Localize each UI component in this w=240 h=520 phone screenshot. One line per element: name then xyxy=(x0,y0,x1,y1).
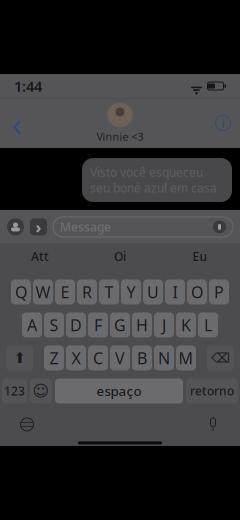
button[interactable]: J xyxy=(154,312,174,337)
button[interactable]: retorno xyxy=(186,378,238,403)
staticText: Z xyxy=(49,347,58,368)
staticText: I xyxy=(172,281,177,302)
staticText: G xyxy=(114,314,126,335)
staticText: Message xyxy=(60,219,111,235)
staticText: 123 xyxy=(4,383,25,399)
button[interactable]: R xyxy=(77,279,97,304)
staticText: C xyxy=(93,347,103,368)
staticText: F xyxy=(94,314,102,335)
button[interactable]: Dictate xyxy=(196,411,230,437)
button[interactable]: S xyxy=(44,312,64,337)
button[interactable]: Y xyxy=(121,279,141,304)
staticText: Vinnie <3 xyxy=(96,129,143,144)
staticText: Att xyxy=(31,248,49,264)
button[interactable]: Emoji xyxy=(30,378,52,403)
button[interactable]: Eu xyxy=(160,240,240,272)
button[interactable]: A xyxy=(22,312,42,337)
staticText: V xyxy=(115,347,125,368)
button[interactable]: K xyxy=(176,312,196,337)
staticText: retorno xyxy=(190,383,234,399)
button[interactable]: V xyxy=(110,345,130,370)
button[interactable]: L xyxy=(198,312,218,337)
button[interactable]: X xyxy=(66,345,86,370)
button[interactable]: Details xyxy=(206,102,240,144)
staticText: ⬆ xyxy=(13,350,25,366)
staticText: M xyxy=(178,347,193,368)
button[interactable]: Delete xyxy=(207,345,234,370)
button[interactable]: C xyxy=(88,345,108,370)
staticText: X xyxy=(71,347,80,368)
button[interactable]: Apps xyxy=(30,218,47,235)
button[interactable]: espaço xyxy=(55,378,183,403)
button[interactable]: I xyxy=(165,279,185,304)
staticText: ‹ xyxy=(11,100,22,146)
button[interactable]: M xyxy=(176,345,196,370)
button[interactable]: 123 xyxy=(2,378,27,403)
button[interactable]: F xyxy=(88,312,108,337)
staticText: E xyxy=(60,281,69,302)
button[interactable]: Oi xyxy=(80,240,160,272)
staticText: O xyxy=(191,281,203,302)
staticText: 1:44 xyxy=(14,76,42,96)
button[interactable]: E xyxy=(55,279,75,304)
button[interactable]: D xyxy=(66,312,86,337)
button[interactable]: Shift xyxy=(6,345,33,370)
button[interactable]: Message xyxy=(53,217,233,237)
staticText: A xyxy=(27,314,37,335)
staticText: H xyxy=(136,314,148,335)
staticText: ☺ xyxy=(32,382,49,400)
staticText: Oi xyxy=(114,248,126,264)
button[interactable]: Z xyxy=(44,345,64,370)
staticText: P xyxy=(214,281,224,302)
button[interactable]: Att xyxy=(0,240,80,272)
staticText: Y xyxy=(126,281,135,302)
staticText: K xyxy=(181,314,191,335)
button[interactable]: Back xyxy=(0,102,34,144)
staticText: Visto você esqueceu seu boné azul em cas… xyxy=(90,164,217,196)
staticText: › xyxy=(35,216,41,237)
button[interactable]: W xyxy=(33,279,53,304)
staticText: i xyxy=(221,115,224,131)
staticText: ⌫ xyxy=(211,350,230,365)
button[interactable]: U xyxy=(143,279,163,304)
staticText: N xyxy=(158,347,170,368)
staticText: espaço xyxy=(96,382,141,400)
staticText: B xyxy=(137,347,147,368)
staticText: J xyxy=(162,314,166,335)
staticText: U xyxy=(147,281,159,302)
button[interactable]: H xyxy=(132,312,152,337)
staticText: R xyxy=(82,281,92,302)
button[interactable]: Camera xyxy=(7,218,24,235)
button[interactable]: N xyxy=(154,345,174,370)
button[interactable]: G xyxy=(110,312,130,337)
staticText: D xyxy=(70,314,82,335)
button[interactable]: Q xyxy=(11,279,31,304)
staticText: S xyxy=(49,314,58,335)
button[interactable]: Next keyboard xyxy=(10,411,44,437)
button[interactable]: P xyxy=(209,279,229,304)
staticText: Q xyxy=(15,281,27,302)
staticText: W xyxy=(35,281,50,302)
staticText: L xyxy=(204,314,212,335)
button[interactable]: O xyxy=(187,279,207,304)
button[interactable]: B xyxy=(132,345,152,370)
button[interactable]: T xyxy=(99,279,119,304)
staticText: T xyxy=(104,281,113,302)
staticText: Eu xyxy=(192,248,207,264)
